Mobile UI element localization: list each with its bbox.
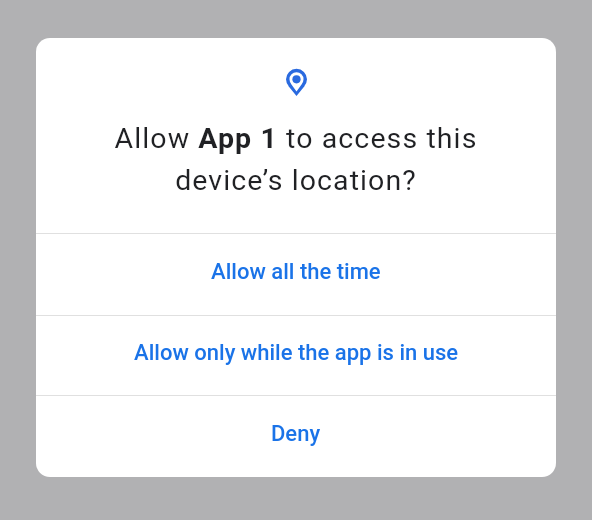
staticText: Allow all the time [211,259,381,285]
button[interactable]: Allow only while the app is in use [36,316,556,395]
button[interactable]: Allow all the time [36,234,556,315]
staticText: Allow only while the app is in use [134,340,459,366]
button[interactable]: Deny [36,396,556,477]
staticText: Allow App 1 to access this device’s loca… [36,122,556,197]
staticText: Deny [271,421,321,447]
